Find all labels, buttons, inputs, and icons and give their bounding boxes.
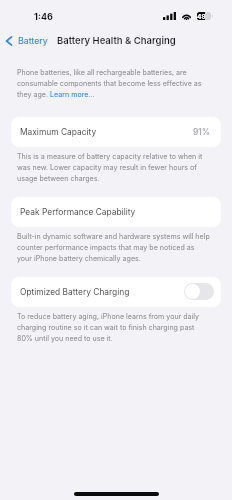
staticText: Maximum Capacity <box>20 127 97 137</box>
staticText: 1:46 <box>34 11 53 22</box>
staticText: To reduce battery aging, iPhone learns f… <box>17 312 211 343</box>
button[interactable]: Peak Performance Capability <box>11 197 221 227</box>
button[interactable]: Optimized Battery Charging <box>11 277 221 307</box>
staticText: 49 <box>197 13 205 20</box>
button[interactable]: Phone batteries, like all rechargeable b… <box>17 68 211 99</box>
button[interactable]: Battery <box>3 33 51 48</box>
staticText: Battery Health & Charging <box>57 35 176 46</box>
staticText: Optimized Battery Charging <box>20 287 130 297</box>
button[interactable]: Optimized Battery Charging toggle <box>184 283 214 300</box>
button[interactable]: Maximum Capacity <box>11 117 221 147</box>
staticText: 91% <box>193 127 211 137</box>
staticText: Built-in dynamic software and hardware s… <box>17 232 211 263</box>
staticText: This is a measure of battery capacity re… <box>17 152 211 183</box>
staticText: Battery <box>18 35 48 46</box>
staticText: Peak Performance Capability <box>20 207 136 217</box>
